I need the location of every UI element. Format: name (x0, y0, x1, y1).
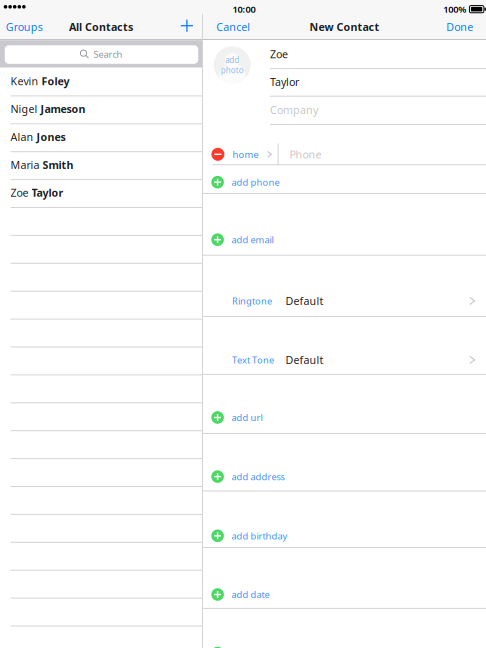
staticText (34, 130, 37, 144)
staticText: 100% (443, 3, 466, 15)
staticText: add phone (231, 176, 279, 188)
staticText: Search (94, 48, 123, 60)
staticText: Taylor (270, 75, 299, 89)
staticText: Cancel (216, 20, 250, 34)
staticText: Text Tone (232, 354, 274, 366)
button[interactable]: Kevin (0, 67, 202, 95)
button[interactable]: add phone (203, 168, 486, 196)
staticText: Zoe (11, 186, 29, 200)
staticText: All Contacts (69, 20, 133, 34)
button[interactable]: Ringtone (203, 287, 486, 315)
button[interactable]: add url (203, 403, 486, 431)
staticText: Zoe (270, 47, 288, 61)
button[interactable]: add date (203, 580, 486, 608)
staticText: add (225, 55, 239, 65)
staticText: home (233, 148, 259, 160)
staticText: Ringtone (232, 295, 272, 307)
staticText: Default (285, 294, 323, 308)
staticText (38, 102, 41, 116)
button[interactable]: Alan (0, 123, 202, 151)
staticText: add email (231, 233, 273, 246)
staticText: add url (231, 411, 262, 424)
button[interactable]: home (211, 148, 273, 161)
staticText: add birthday (231, 530, 287, 542)
staticText: Company (270, 103, 318, 117)
button[interactable]: Done (438, 14, 486, 40)
staticText: add date (231, 588, 269, 601)
staticText: Foley (42, 74, 70, 88)
staticText: Done (446, 20, 473, 34)
button[interactable]: Groups (0, 14, 49, 40)
staticText: Jameson (41, 102, 86, 116)
staticText: Taylor (32, 186, 64, 200)
staticText: Groups (6, 20, 43, 34)
staticText (40, 158, 43, 172)
button[interactable]: Cancel (203, 14, 258, 40)
button[interactable]: Add contact (172, 13, 202, 39)
staticText: photo (221, 65, 244, 75)
button[interactable]: Zoe (0, 179, 202, 206)
button[interactable]: Maria (0, 151, 202, 179)
staticText: Kevin (11, 74, 39, 88)
staticText: Default (285, 353, 323, 367)
staticText: Phone (290, 147, 322, 161)
button[interactable]: add email (203, 226, 486, 254)
button[interactable]: Add photo (214, 46, 251, 83)
button[interactable]: Text Tone (203, 346, 486, 374)
staticText: New Contact (309, 20, 379, 34)
button[interactable]: add related name (203, 639, 486, 648)
staticText: Maria (11, 158, 40, 172)
staticText: Jones (37, 130, 66, 144)
button[interactable]: Nigel (0, 95, 202, 123)
button[interactable]: add birthday (203, 522, 486, 550)
staticText: Alan (11, 130, 34, 144)
staticText: Nigel (11, 102, 38, 116)
staticText: add address (231, 470, 284, 483)
staticText: Smith (43, 158, 74, 172)
button[interactable]: add address (203, 463, 486, 491)
staticText: 10:00 (233, 3, 256, 15)
